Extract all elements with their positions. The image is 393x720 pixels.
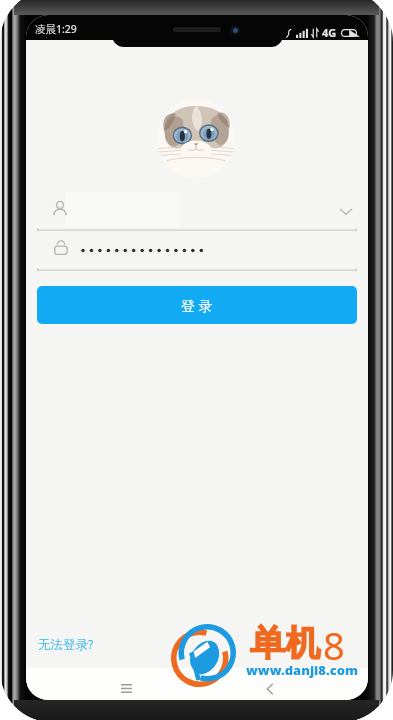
button[interactable]: 无法登录? <box>34 632 98 657</box>
button[interactable]: Recent apps <box>112 674 140 700</box>
staticText: www.danji8.com <box>246 661 358 679</box>
button[interactable]: Back <box>256 675 284 700</box>
staticText: 登 录 <box>181 296 213 315</box>
staticText: 无法登录? <box>38 636 94 653</box>
button[interactable] <box>37 190 357 228</box>
button[interactable]: 登 录 <box>37 286 357 324</box>
button[interactable] <box>37 231 357 267</box>
staticText: 8 <box>323 619 345 671</box>
staticText: 凌晨1:29 <box>35 22 77 36</box>
staticText: 单机 <box>250 621 320 665</box>
staticText: 4G <box>322 25 337 40</box>
